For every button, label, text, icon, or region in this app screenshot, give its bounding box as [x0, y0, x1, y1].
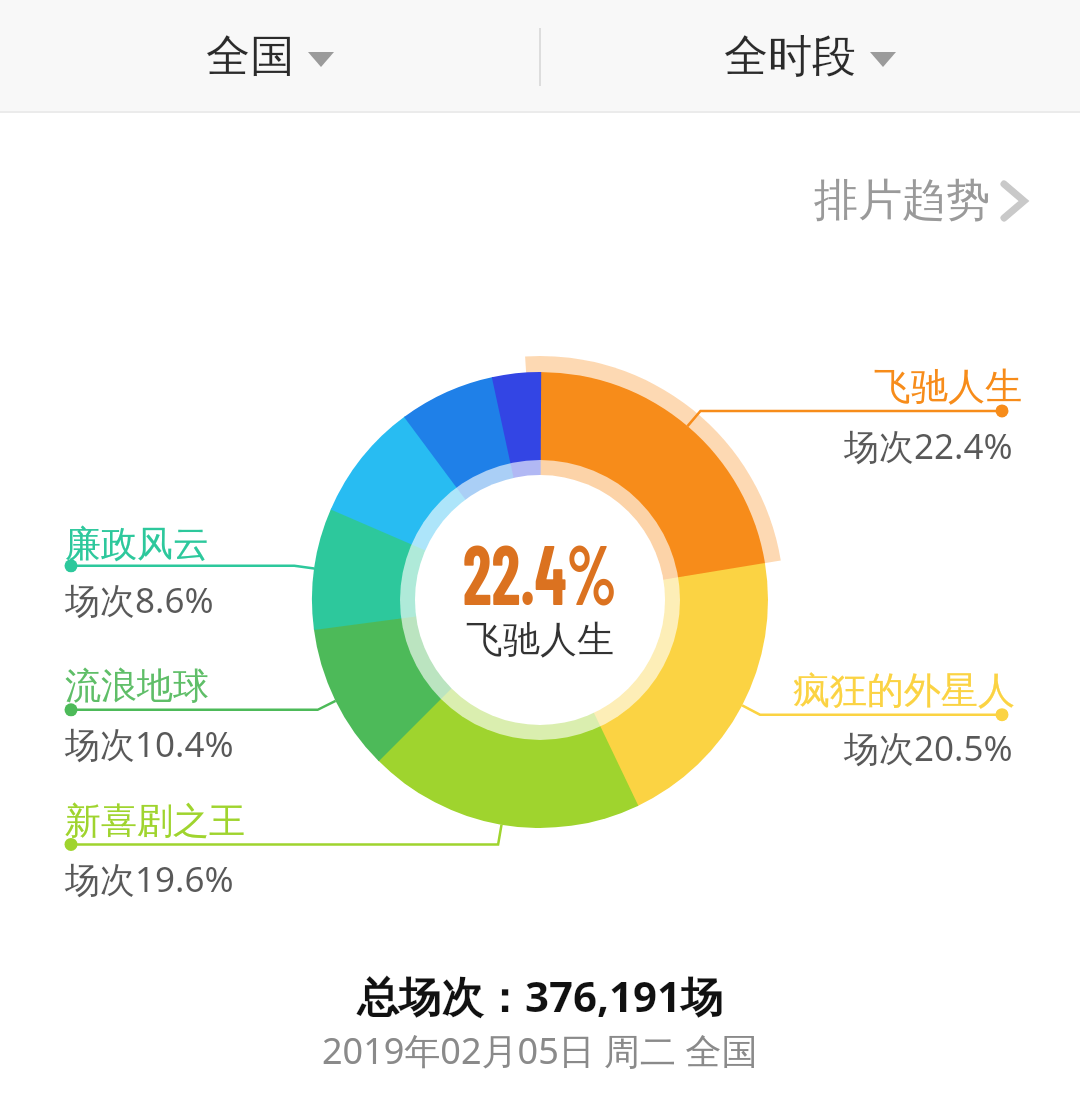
staticText: 全时段 [724, 29, 856, 84]
staticText: 总场次：376,191场 [357, 967, 724, 1024]
button[interactable]: 全国 [0, 0, 540, 112]
staticText: 疯狂的外星人 [793, 667, 1015, 714]
staticText: 新喜剧之王 [65, 798, 245, 843]
staticText: 场次8.6% [65, 576, 214, 624]
button[interactable]: 全时段 [540, 0, 1080, 112]
staticText: 飞驰人生 [466, 616, 614, 663]
staticText: 流浪地球 [65, 663, 209, 708]
staticText: 飞驰人生 [874, 363, 1022, 410]
staticText: 全国 [206, 29, 294, 84]
staticText: 场次20.5% [844, 724, 1013, 772]
staticText: 排片趋势 [814, 173, 990, 228]
staticText: 场次22.4% [844, 422, 1013, 470]
staticText: 22.4% [463, 521, 617, 622]
staticText: 2019年02月05日 周二 全国 [322, 1026, 758, 1075]
staticText: 场次10.4% [65, 720, 234, 768]
staticText: 场次19.6% [65, 855, 234, 903]
button[interactable]: 排片趋势 [814, 173, 1026, 228]
staticText: 廉政风云 [65, 521, 209, 566]
